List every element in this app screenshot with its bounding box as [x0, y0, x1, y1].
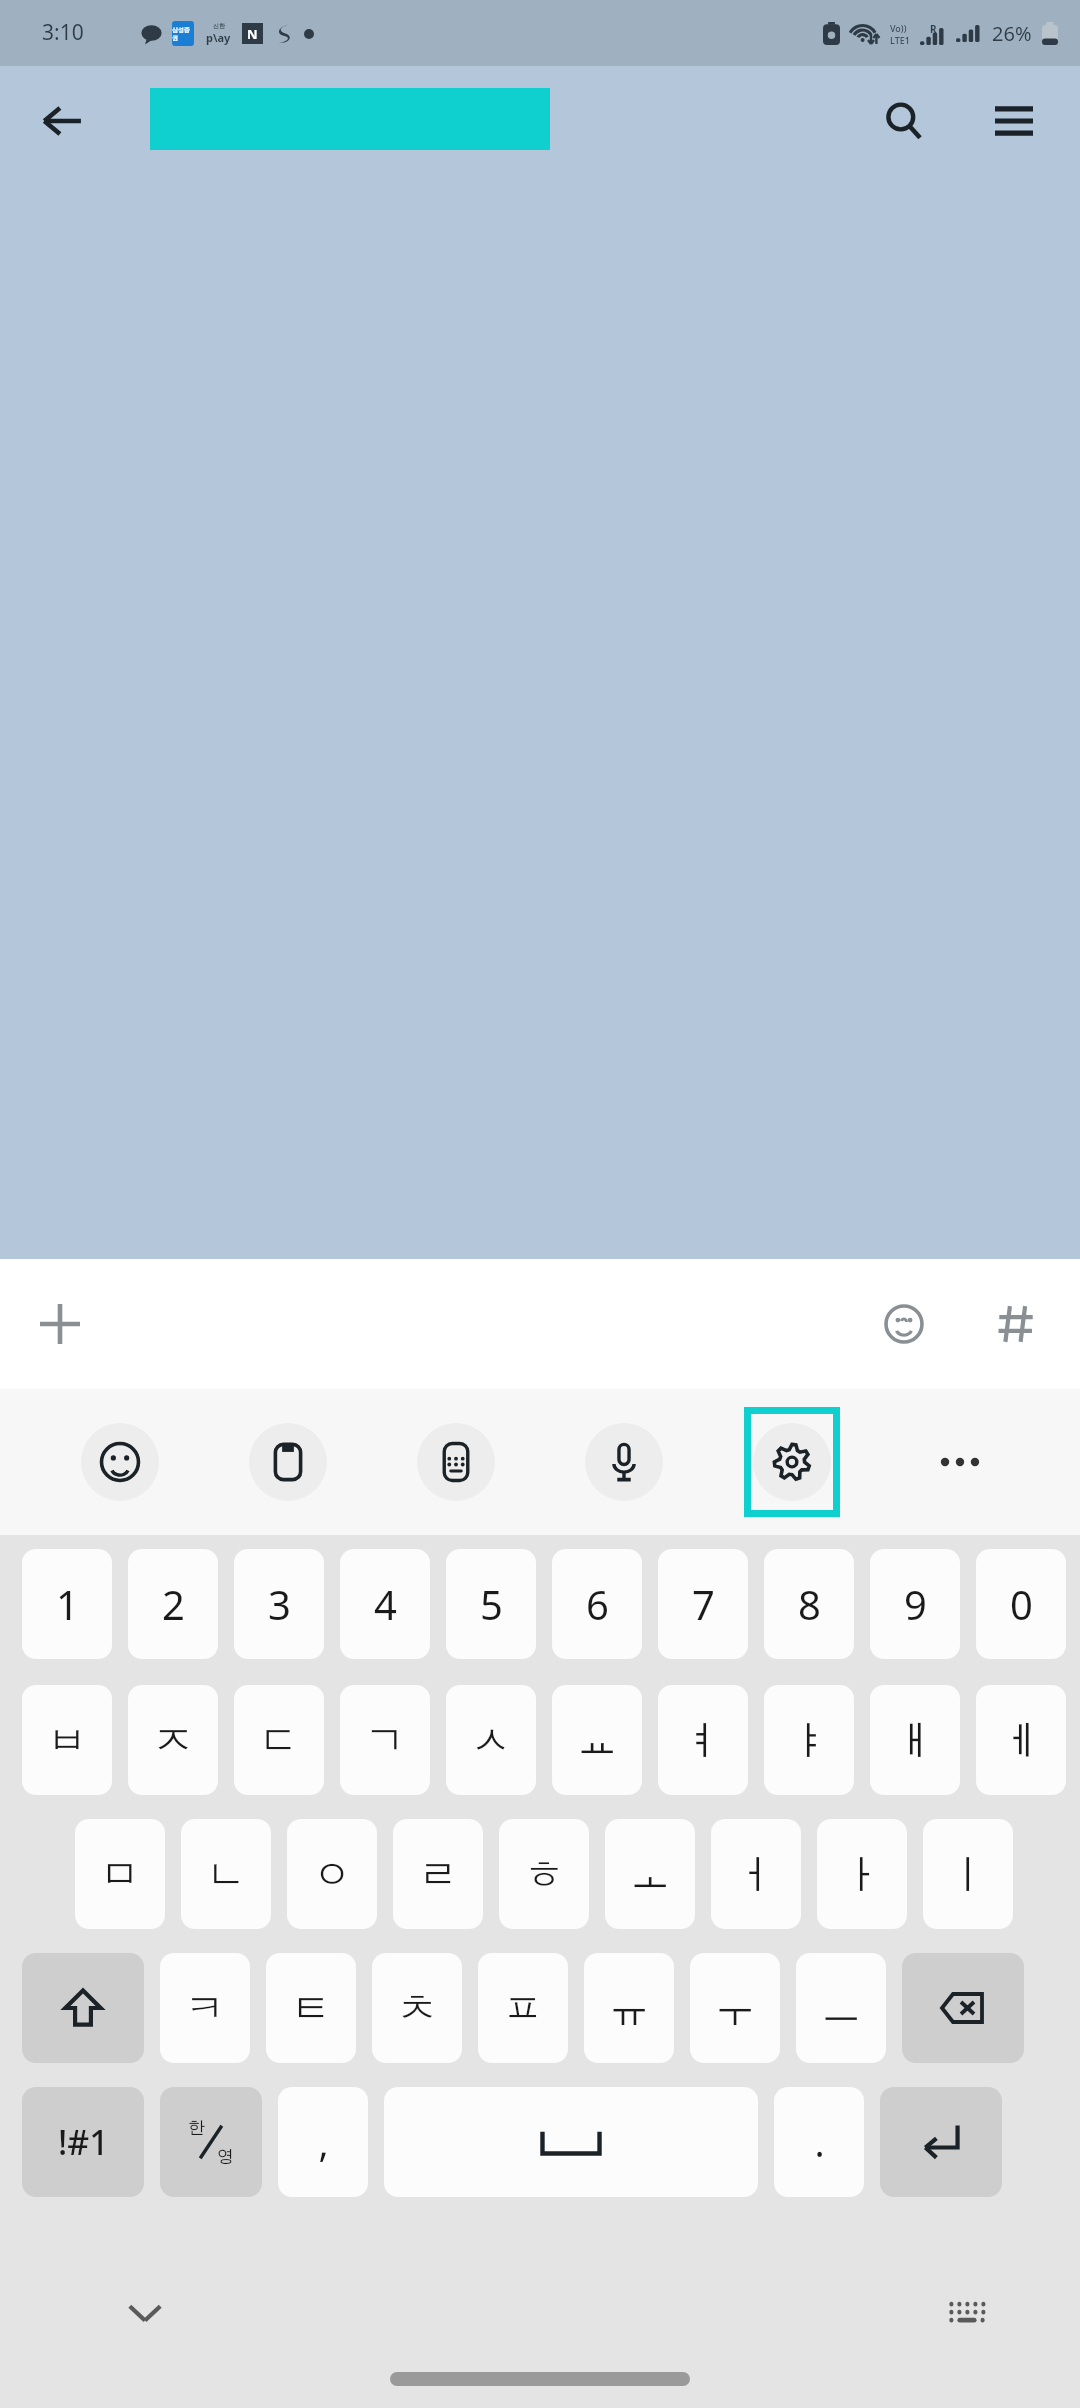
button[interactable]: ㅔ — [976, 1685, 1066, 1795]
staticText: ㅔ — [1001, 1715, 1041, 1765]
staticText: R — [930, 22, 937, 36]
staticText: ㅏ — [842, 1849, 882, 1899]
button[interactable]: Emoji — [864, 1284, 944, 1364]
button[interactable]: Enter — [880, 2087, 1002, 2197]
staticText: N — [247, 25, 258, 43]
button[interactable]: 1 — [22, 1549, 112, 1659]
button[interactable]: Backspace — [902, 1953, 1024, 2063]
staticText: ㄷ — [259, 1715, 299, 1765]
button[interactable]: Keyboard mode — [408, 1407, 504, 1517]
staticText: ㅛ — [577, 1715, 617, 1765]
button[interactable]: ㅈ — [128, 1685, 218, 1795]
staticText: ㅅ — [471, 1715, 511, 1765]
staticText: LTE1 — [890, 34, 910, 46]
button[interactable]: Voice input — [576, 1407, 672, 1517]
staticText: 0 — [1010, 1577, 1033, 1631]
staticText: 3:10 — [42, 18, 84, 47]
button[interactable]: ㅍ — [478, 1953, 568, 2063]
button[interactable]: Keyboard settings — [751, 1414, 833, 1510]
button[interactable]: 2 — [128, 1549, 218, 1659]
button[interactable]: Add attachment — [20, 1284, 100, 1364]
staticText: ㅇ — [312, 1849, 352, 1899]
button[interactable]: ㅕ — [658, 1685, 748, 1795]
button[interactable]: ㅐ — [870, 1685, 960, 1795]
button[interactable]: ㅠ — [584, 1953, 674, 2063]
staticText: ㅓ — [736, 1849, 776, 1899]
button[interactable]: 6 — [552, 1549, 642, 1659]
button[interactable]: ㅣ — [923, 1819, 1013, 1929]
staticText: , — [318, 2116, 329, 2168]
staticText: 7 — [692, 1577, 715, 1631]
staticText: ㅐ — [895, 1715, 935, 1765]
button[interactable]: . — [774, 2087, 864, 2197]
staticText: 삼성증권 — [172, 26, 194, 42]
staticText: ㅕ — [683, 1715, 723, 1765]
button[interactable]: ㅊ — [372, 1953, 462, 2063]
staticText: 한 — [188, 2117, 205, 2138]
staticText: 1 — [56, 1577, 79, 1631]
staticText: 2 — [162, 1577, 185, 1631]
button[interactable]: Menu — [974, 81, 1054, 161]
button[interactable]: 7 — [658, 1549, 748, 1659]
staticText: ㅜ — [715, 1983, 755, 2033]
staticText: 영 — [217, 2146, 234, 2167]
staticText: Vo)) — [890, 22, 907, 34]
button[interactable]: ㅡ — [796, 1953, 886, 2063]
staticText: ㅁ — [100, 1849, 140, 1899]
staticText: ㅠ — [609, 1983, 649, 2033]
staticText: !#1 — [58, 2119, 109, 2165]
button[interactable]: ㄹ — [393, 1819, 483, 1929]
button[interactable]: ㄷ — [234, 1685, 324, 1795]
button[interactable]: 3 — [234, 1549, 324, 1659]
button[interactable]: Search — [864, 81, 944, 161]
button[interactable]: ㅓ — [711, 1819, 801, 1929]
button[interactable]: ㅋ — [160, 1953, 250, 2063]
button[interactable]: ㅌ — [266, 1953, 356, 2063]
staticText: p\ay — [206, 30, 231, 45]
button[interactable]: ㅂ — [22, 1685, 112, 1795]
button[interactable]: More options — [912, 1412, 1008, 1512]
button[interactable]: Change keyboard — [932, 2278, 1002, 2348]
staticText: 3 — [268, 1577, 291, 1631]
button[interactable]: 8 — [764, 1549, 854, 1659]
staticText: ㅗ — [630, 1849, 670, 1899]
button[interactable]: Korean English toggle — [160, 2087, 262, 2197]
staticText: ㅊ — [397, 1983, 437, 2033]
button[interactable]: ㅜ — [690, 1953, 780, 2063]
button[interactable]: Shift — [22, 1953, 144, 2063]
staticText: 6 — [586, 1577, 609, 1631]
staticText: 4 — [374, 1577, 397, 1631]
button[interactable]: ㄴ — [181, 1819, 271, 1929]
button[interactable]: !#1 — [22, 2087, 144, 2197]
button[interactable]: Hide keyboard — [110, 2278, 180, 2348]
staticText: 9 — [904, 1577, 927, 1631]
button[interactable]: ㄱ — [340, 1685, 430, 1795]
button[interactable]: ㅁ — [75, 1819, 165, 1929]
staticText: 26% — [992, 20, 1032, 47]
button[interactable]: ㅇ — [287, 1819, 377, 1929]
button[interactable]: Back — [22, 81, 102, 161]
staticText: . — [814, 2116, 825, 2168]
button[interactable]: ㅗ — [605, 1819, 695, 1929]
button[interactable]: Clipboard — [240, 1407, 336, 1517]
button[interactable]: Space — [384, 2087, 758, 2197]
staticText: ㄱ — [365, 1715, 405, 1765]
button[interactable]: 4 — [340, 1549, 430, 1659]
button[interactable]: 0 — [976, 1549, 1066, 1659]
staticText: ㄴ — [206, 1849, 246, 1899]
staticText: ㅎ — [524, 1849, 564, 1899]
button[interactable]: ㅑ — [764, 1685, 854, 1795]
button[interactable]: ㅅ — [446, 1685, 536, 1795]
button[interactable]: Hashtag — [976, 1284, 1056, 1364]
button[interactable]: ㅏ — [817, 1819, 907, 1929]
button[interactable]: , — [278, 2087, 368, 2197]
staticText: ㅋ — [185, 1983, 225, 2033]
button[interactable]: ㅛ — [552, 1685, 642, 1795]
button[interactable]: ㅎ — [499, 1819, 589, 1929]
staticText: ㅈ — [153, 1715, 193, 1765]
button[interactable]: 5 — [446, 1549, 536, 1659]
staticText: ㅣ — [948, 1849, 988, 1899]
button[interactable]: Emoji — [72, 1407, 168, 1517]
button[interactable]: 9 — [870, 1549, 960, 1659]
